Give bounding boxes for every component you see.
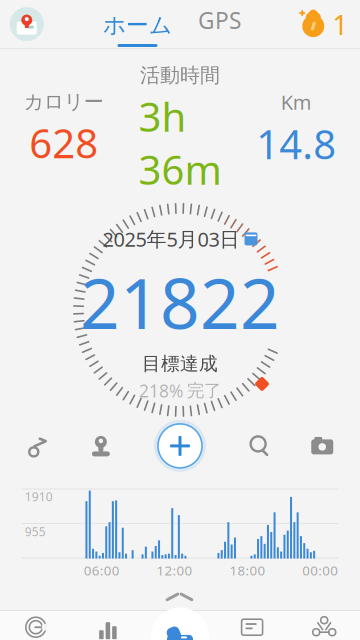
button[interactable]: Activity [144,610,216,640]
button[interactable]: Add [152,418,208,474]
staticText: 完了 [187,380,221,401]
staticText: Km [281,89,312,115]
staticText: 2025年5月03日 [102,226,239,252]
staticText: 1910 [25,488,53,504]
staticText: 218% [139,379,183,402]
staticText: 06:00 [84,561,120,579]
button[interactable]: Streak 1 [298,5,360,43]
staticText: 955 [25,523,46,539]
staticText: 活動時間 [140,63,220,88]
button[interactable]: インサイト [72,611,144,640]
button[interactable]: フィード [216,611,288,640]
staticText: 21822 [80,256,280,348]
button[interactable]: Expand [0,584,360,610]
staticText: 1 [332,5,348,43]
button[interactable]: Camera [310,434,334,458]
staticText: カロリー [24,90,104,114]
staticText: 14.8 [256,117,336,170]
staticText: ホーム [103,11,172,39]
staticText: 18:00 [229,561,265,579]
button[interactable]: GPS [172,5,241,43]
button[interactable]: チャレンジ [288,611,360,640]
button[interactable]: コーチ [0,611,72,640]
button[interactable]: Search [247,434,271,458]
button[interactable]: Places [89,434,113,458]
button[interactable]: ホーム [103,1,172,47]
staticText: 目標達成 [142,352,218,375]
staticText: 628 [29,116,98,169]
button[interactable]: Routes [26,434,50,458]
staticText: 12:00 [157,561,193,579]
staticText: GPS [198,5,241,35]
staticText: 00:00 [302,561,338,579]
button[interactable]: Map [0,5,46,43]
staticText: 3h 36m [138,90,221,196]
